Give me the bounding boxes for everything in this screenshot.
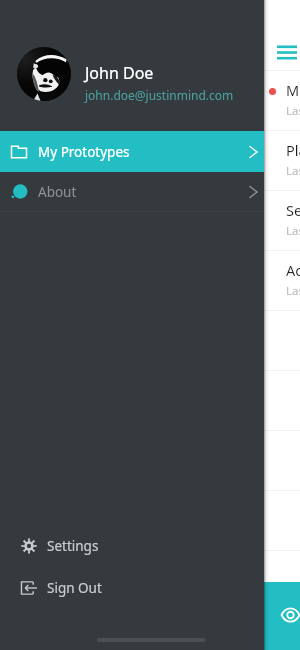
button[interactable]: Settings screen bbox=[250, 191, 300, 250]
staticText: My Prototypes bbox=[38, 143, 130, 161]
staticText: Player app bbox=[286, 140, 300, 160]
staticText: Last edit: 5 days ago bbox=[286, 163, 300, 179]
button[interactable]: My Prototypes bbox=[0, 131, 264, 172]
button[interactable]: Menu bbox=[269, 34, 300, 70]
staticText: Last edit: 2 days ago bbox=[286, 103, 300, 119]
staticText: Settings screen bbox=[286, 200, 300, 220]
staticText: About bbox=[38, 183, 77, 201]
staticText: Mail app prototype bbox=[286, 80, 300, 100]
staticText: Sign Out bbox=[47, 579, 102, 597]
staticText: Last edit: 1 week ago bbox=[286, 223, 300, 239]
button[interactable]: Sign Out bbox=[0, 571, 264, 605]
button[interactable]: About bbox=[0, 172, 264, 211]
staticText: Settings bbox=[47, 537, 99, 555]
staticText: Account wizard bbox=[286, 260, 300, 280]
staticText: john.doe@justinmind.com bbox=[85, 87, 234, 103]
staticText: Last edit: 2 weeks ago bbox=[286, 283, 300, 299]
button[interactable]: Account wizard bbox=[250, 251, 300, 310]
staticText: John Doe bbox=[85, 62, 154, 84]
button[interactable]: Preview bbox=[250, 582, 300, 650]
button[interactable]: Settings bbox=[0, 529, 264, 563]
button[interactable]: Player app bbox=[250, 131, 300, 190]
button[interactable]: Mail app prototype bbox=[250, 71, 300, 130]
